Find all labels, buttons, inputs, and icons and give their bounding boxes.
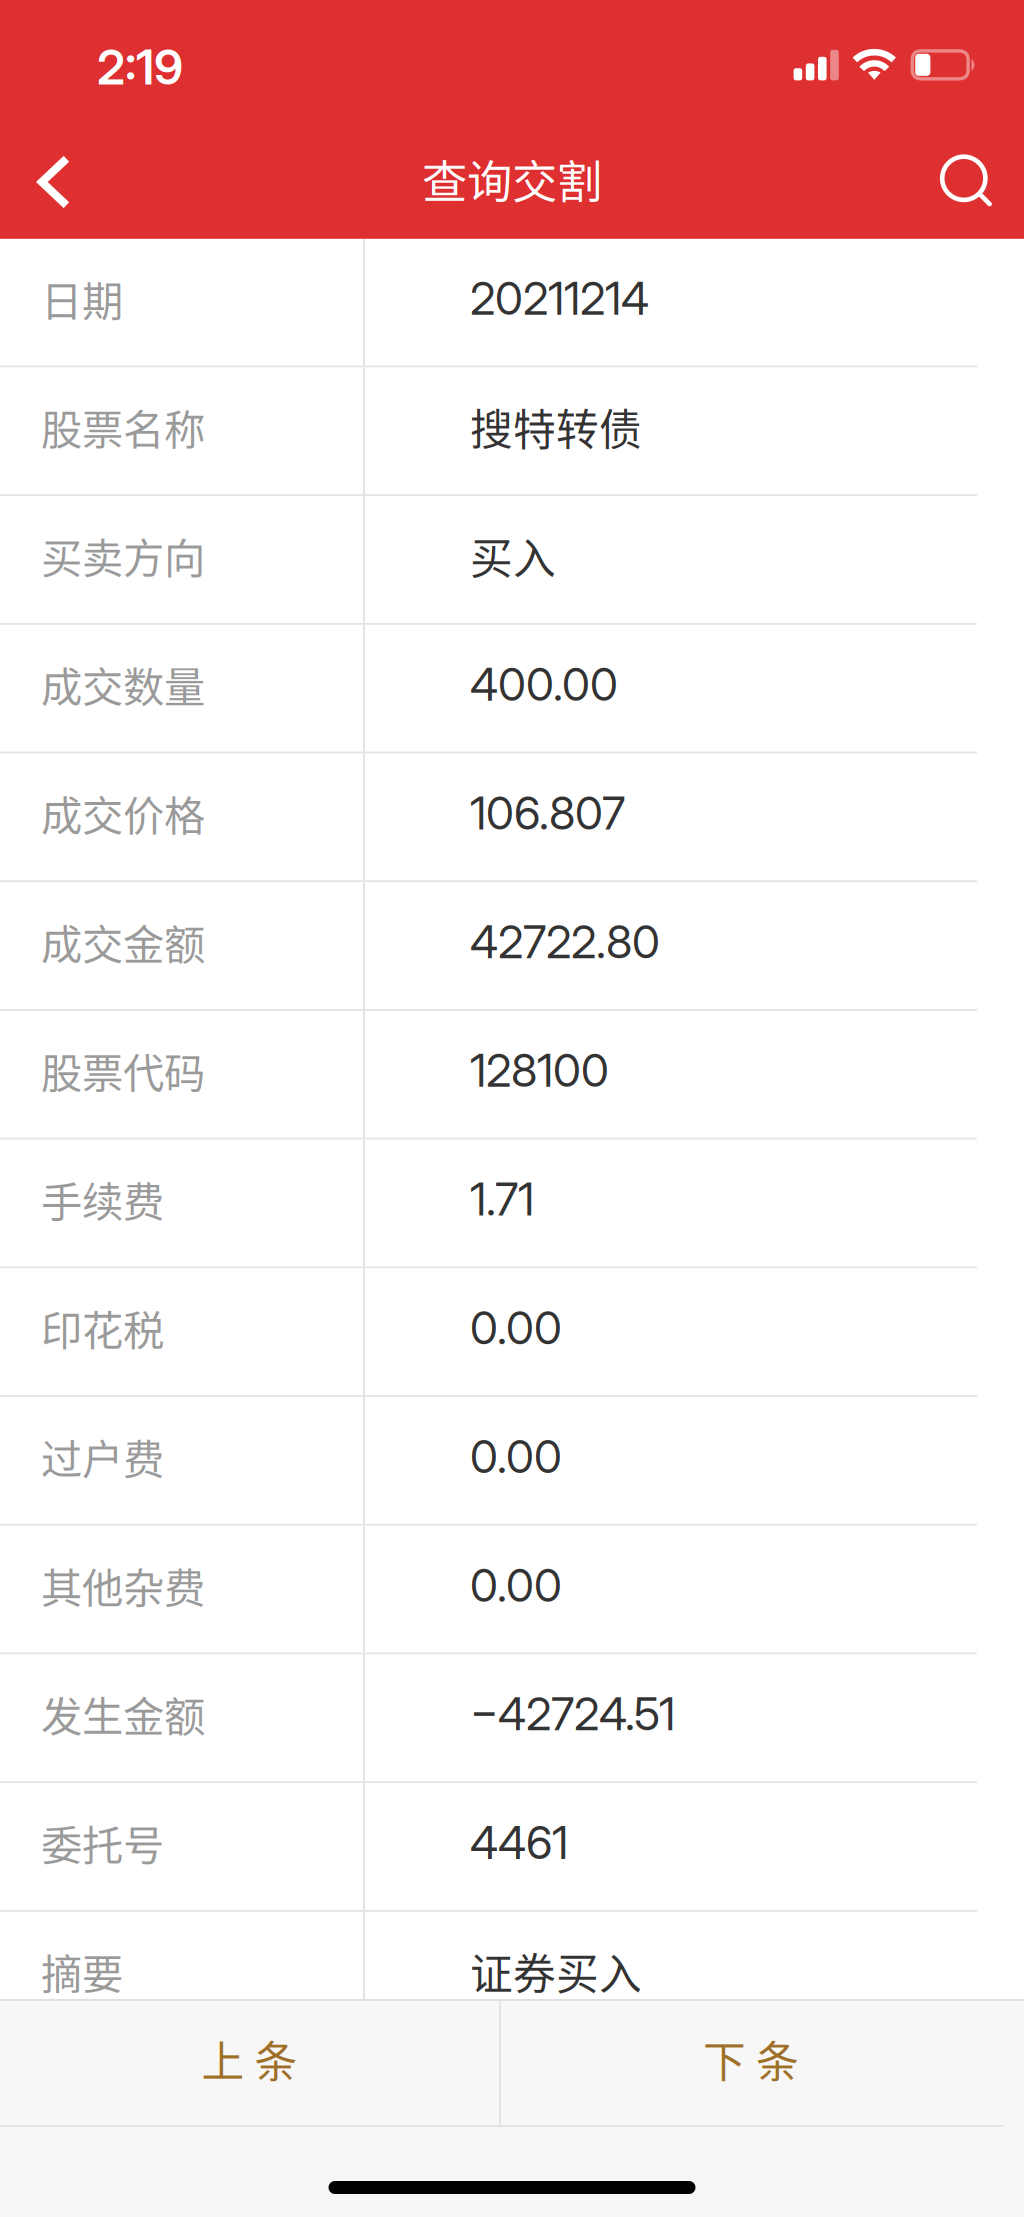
button[interactable]: 发生金额 (0, 1654, 1024, 1783)
staticText: 4461 (470, 1815, 568, 1870)
staticText: −42724.51 (470, 1686, 675, 1741)
button[interactable]: 印花税 (0, 1268, 1024, 1397)
staticText: 其他杂费 (41, 1555, 205, 1615)
button[interactable]: 成交价格 (0, 754, 1024, 882)
button[interactable]: 手续费 (0, 1140, 1024, 1268)
staticText: 买入 (470, 525, 556, 586)
staticText: 摘要 (41, 1941, 123, 2001)
staticText: 手续费 (41, 1169, 164, 1229)
staticText: 过户费 (41, 1426, 164, 1486)
staticText: 日期 (41, 268, 123, 328)
button[interactable]: 成交数量 (0, 625, 1024, 754)
staticText: 成交金额 (41, 912, 205, 972)
button[interactable]: Back (0, 126, 110, 236)
staticText: 0.00 (470, 1558, 562, 1613)
staticText: 上 条 (201, 2028, 297, 2090)
button[interactable]: 股票代码 (0, 1011, 1024, 1140)
staticText: 400.00 (470, 657, 618, 712)
staticText: 股票代码 (41, 1040, 205, 1100)
staticText: 证券买入 (470, 1940, 642, 2002)
staticText: 128100 (470, 1043, 609, 1098)
button[interactable]: 股票名称 (0, 367, 1024, 496)
staticText: 印花税 (41, 1298, 164, 1358)
staticText: 2:19 (97, 38, 183, 96)
button[interactable]: 委托号 (0, 1783, 1024, 1912)
staticText: 股票名称 (41, 397, 205, 457)
staticText: 搜特转债 (470, 396, 642, 458)
staticText: 委托号 (41, 1813, 164, 1872)
button[interactable]: 成交金额 (0, 882, 1024, 1011)
button[interactable]: Search (904, 126, 1014, 236)
staticText: 1.71 (470, 1172, 534, 1226)
staticText: 查询交割 (422, 146, 602, 212)
staticText: 106.807 (470, 785, 625, 840)
button[interactable]: 下 条 (501, 2001, 1001, 2125)
staticText: 成交数量 (41, 654, 205, 714)
staticText: 20211214 (470, 271, 649, 326)
staticText: 发生金额 (41, 1684, 205, 1744)
staticText: 0.00 (470, 1300, 562, 1355)
staticText: 下 条 (703, 2028, 799, 2090)
button[interactable]: 买卖方向 (0, 496, 1024, 625)
staticText: 买卖方向 (41, 526, 205, 585)
staticText: 0.00 (470, 1429, 562, 1484)
button[interactable]: 摘要 (0, 1912, 1024, 2041)
button[interactable]: 过户费 (0, 1397, 1024, 1526)
staticText: 42722.80 (470, 914, 660, 969)
button[interactable]: 其他杂费 (0, 1526, 1024, 1654)
staticText: 成交价格 (41, 783, 205, 843)
button[interactable]: 日期 (0, 239, 1024, 367)
button[interactable]: 上 条 (0, 2001, 499, 2125)
